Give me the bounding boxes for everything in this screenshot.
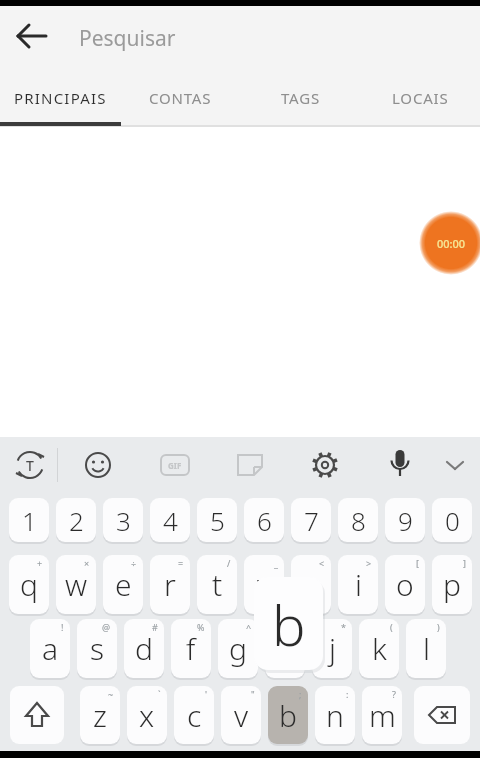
button[interactable]: s xyxy=(77,619,117,678)
button[interactable]: q xyxy=(9,555,49,614)
staticText: [ xyxy=(416,557,419,569)
button[interactable] xyxy=(10,686,64,744)
staticText: GIF xyxy=(168,460,182,471)
staticText: ) xyxy=(437,621,440,633)
button[interactable]: h xyxy=(265,619,305,678)
button[interactable]: v xyxy=(221,686,261,744)
staticText: r xyxy=(164,564,176,605)
button[interactable]: j xyxy=(312,619,352,678)
button[interactable]: y xyxy=(244,555,284,614)
staticText: ! xyxy=(61,621,64,633)
staticText: _ xyxy=(274,557,278,569)
staticText: 0 xyxy=(445,503,460,538)
staticText: 4 xyxy=(163,503,178,538)
staticText: 1 xyxy=(22,503,37,538)
button[interactable]: c xyxy=(174,686,214,744)
staticText: = xyxy=(178,557,184,569)
staticText: b xyxy=(279,695,297,736)
staticText: TAGS xyxy=(281,88,320,108)
staticText: f xyxy=(186,628,196,669)
button[interactable]: u xyxy=(291,555,331,614)
staticText: / xyxy=(227,557,231,569)
staticText: " xyxy=(251,688,255,700)
staticText: n xyxy=(326,695,344,736)
staticText: q xyxy=(20,564,38,605)
staticText: ] xyxy=(463,557,466,569)
button[interactable] xyxy=(303,443,347,487)
staticText: T xyxy=(26,456,34,475)
button[interactable]: f xyxy=(171,619,211,678)
button[interactable]: 4 xyxy=(150,498,190,542)
staticText: h xyxy=(276,628,294,669)
button[interactable]: x xyxy=(127,686,167,744)
staticText: i xyxy=(355,564,362,605)
staticText: 6 xyxy=(257,503,272,538)
button[interactable]: T xyxy=(8,443,52,487)
staticText: 5 xyxy=(210,503,225,538)
button[interactable]: i xyxy=(338,555,378,614)
staticText: ( xyxy=(390,621,393,633)
button[interactable]: 0 xyxy=(432,498,472,542)
button[interactable]: z xyxy=(80,686,120,744)
staticText: @ xyxy=(102,621,111,633)
button[interactable]: 3 xyxy=(103,498,143,542)
button[interactable]: n xyxy=(315,686,355,744)
button[interactable]: w xyxy=(56,555,96,614)
button[interactable]: e xyxy=(103,555,143,614)
button[interactable]: 8 xyxy=(338,498,378,542)
button[interactable]: b xyxy=(268,686,308,744)
staticText: ? xyxy=(392,688,396,700)
button[interactable]: l xyxy=(406,619,446,678)
staticText: 9 xyxy=(398,503,413,538)
button[interactable]: d xyxy=(124,619,164,678)
button[interactable]: 6 xyxy=(244,498,284,542)
button[interactable]: o xyxy=(385,555,425,614)
staticText: p xyxy=(443,564,461,605)
staticText: b xyxy=(272,586,306,662)
staticText: PRINCIPAIS xyxy=(14,88,107,108)
staticText: j xyxy=(329,628,336,669)
staticText: 8 xyxy=(351,503,366,538)
staticText: < xyxy=(319,557,325,569)
button[interactable]: m xyxy=(362,686,402,744)
button[interactable]: 1 xyxy=(9,498,49,542)
button[interactable] xyxy=(228,443,272,487)
staticText: % xyxy=(197,621,205,633)
button[interactable]: 7 xyxy=(291,498,331,542)
staticText: & xyxy=(292,621,299,633)
button[interactable]: 5 xyxy=(197,498,237,542)
staticText: ' xyxy=(205,688,208,700)
staticText: * xyxy=(341,621,346,633)
staticText: 3 xyxy=(116,503,131,538)
button[interactable]: g xyxy=(218,619,258,678)
button[interactable]: t xyxy=(197,555,237,614)
button[interactable]: 9 xyxy=(385,498,425,542)
button[interactable]: r xyxy=(150,555,190,614)
button[interactable]: p xyxy=(432,555,472,614)
button[interactable]: a xyxy=(30,619,70,678)
button[interactable]: 00:00 xyxy=(419,211,480,275)
button[interactable] xyxy=(433,443,477,487)
staticText: CONTAS xyxy=(149,88,212,108)
staticText: > xyxy=(366,557,372,569)
staticText: d xyxy=(135,628,153,669)
button[interactable] xyxy=(378,443,422,487)
button[interactable]: TAGS xyxy=(240,74,360,122)
button[interactable] xyxy=(10,14,54,58)
staticText: x xyxy=(139,695,155,736)
staticText: g xyxy=(229,628,247,669)
staticText: Pesquisar xyxy=(79,24,176,53)
staticText: + xyxy=(37,557,43,569)
button[interactable]: PRINCIPAIS xyxy=(0,74,120,122)
staticText: ` xyxy=(158,688,161,700)
button[interactable]: k xyxy=(359,619,399,678)
button[interactable] xyxy=(76,443,120,487)
button[interactable] xyxy=(414,686,470,744)
button[interactable]: 2 xyxy=(56,498,96,542)
button[interactable]: LOCAIS xyxy=(360,74,480,122)
button[interactable]: CONTAS xyxy=(120,74,240,122)
button[interactable]: GIF xyxy=(153,443,197,487)
staticText: k xyxy=(372,628,387,669)
staticText: a xyxy=(42,628,59,669)
